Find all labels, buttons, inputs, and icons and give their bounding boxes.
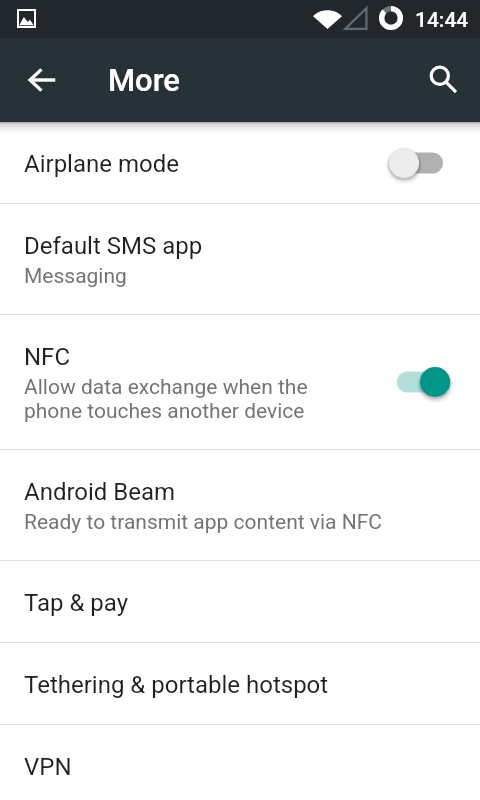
- button[interactable]: Search: [412, 48, 476, 112]
- button[interactable]: NFC: [0, 315, 480, 449]
- button[interactable]: VPN: [0, 725, 480, 800]
- staticText: Ready to transmit app content via NFC: [24, 510, 383, 535]
- staticText: 14:44: [415, 8, 469, 33]
- button[interactable]: Tap & pay: [0, 561, 480, 642]
- button[interactable]: Tethering & portable hotspot: [0, 643, 480, 724]
- staticText: Android Beam: [24, 478, 176, 506]
- staticText: VPN: [24, 753, 72, 781]
- button[interactable]: Navigate up: [10, 48, 74, 112]
- button[interactable]: Airplane mode: [0, 122, 480, 203]
- staticText: NFC: [24, 343, 71, 371]
- staticText: Airplane mode: [24, 150, 179, 178]
- button[interactable]: Android Beam: [0, 450, 480, 560]
- staticText: Messaging: [24, 264, 127, 289]
- button[interactable]: Default SMS app: [0, 204, 480, 314]
- staticText: Allow data exchange when the phone touch…: [24, 375, 308, 423]
- staticText: Default SMS app: [24, 232, 203, 260]
- staticText: Tap & pay: [24, 589, 129, 617]
- staticText: Tethering & portable hotspot: [24, 671, 329, 699]
- staticText: More: [108, 62, 180, 98]
